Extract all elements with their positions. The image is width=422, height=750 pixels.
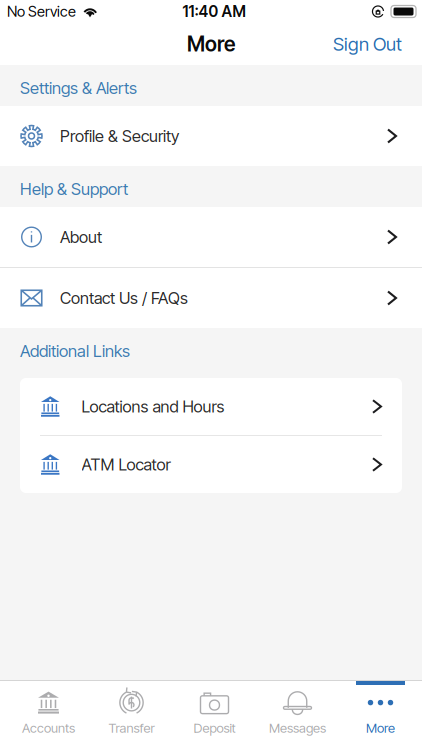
staticText: Transfer [108, 720, 154, 736]
staticText: 11:40 AM [182, 2, 245, 21]
button[interactable]: More [339, 681, 422, 750]
button[interactable]: Deposit [173, 681, 256, 750]
button[interactable]: About [0, 207, 422, 267]
staticText: More [187, 31, 235, 56]
staticText: Messages [269, 720, 326, 736]
button[interactable]: Transfer [90, 681, 173, 750]
staticText: No Service [7, 3, 76, 20]
staticText: Settings & Alerts [20, 78, 137, 98]
button[interactable]: Locations and Hours [20, 378, 402, 435]
button[interactable]: Messages [256, 681, 339, 750]
button[interactable]: Sign Out [317, 23, 422, 65]
button[interactable]: Contact Us / FAQs [0, 268, 422, 328]
button[interactable]: Profile & Security [0, 106, 422, 166]
staticText: Sign Out [333, 33, 402, 55]
staticText: Profile & Security [60, 126, 179, 146]
staticText: Contact Us / FAQs [60, 288, 188, 308]
staticText: About [60, 227, 102, 247]
button[interactable]: ATM Locator [20, 436, 402, 493]
staticText: Additional Links [20, 341, 130, 361]
staticText: More [366, 720, 395, 736]
button[interactable]: Accounts [7, 681, 90, 750]
staticText: Accounts [22, 720, 75, 736]
staticText: Deposit [193, 720, 235, 736]
staticText: Locations and Hours [81, 397, 224, 416]
staticText: Help & Support [20, 179, 128, 199]
staticText: ATM Locator [81, 455, 170, 474]
